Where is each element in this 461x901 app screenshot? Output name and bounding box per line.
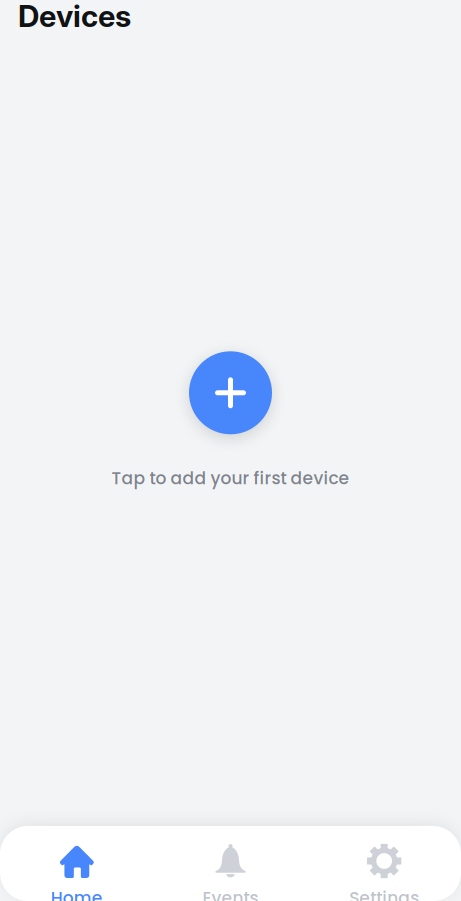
staticText: Settings <box>349 886 419 901</box>
staticText: Home <box>51 886 103 901</box>
button[interactable]: Settings <box>307 826 461 901</box>
button[interactable]: Events <box>154 826 307 901</box>
staticText: Tap to add your first device <box>111 466 349 490</box>
staticText: Events <box>202 886 258 901</box>
staticText: Devices <box>18 0 131 34</box>
button[interactable]: Add your first device <box>189 351 272 434</box>
button[interactable]: Home <box>0 826 154 901</box>
